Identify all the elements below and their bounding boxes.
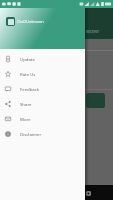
button[interactable]: Rate Us <box>0 66 85 81</box>
button[interactable]: Disclaimer <box>0 126 85 141</box>
staticText: Feedback <box>20 86 40 92</box>
staticText: More <box>20 116 31 122</box>
staticText: Update <box>20 56 35 62</box>
staticText: Rate Us <box>20 71 36 77</box>
staticText: RECENT <box>86 29 99 34</box>
button[interactable]: Share <box>0 96 85 111</box>
staticText: Dial2Unknown <box>17 19 44 24</box>
button[interactable]: Feedback <box>0 81 85 96</box>
button[interactable] <box>86 93 105 108</box>
button[interactable]: Recents <box>81 186 95 200</box>
button[interactable]: More <box>0 111 85 126</box>
staticText: Share <box>20 101 32 107</box>
button[interactable]: Update <box>0 51 85 66</box>
staticText: Disclaimer <box>20 131 42 137</box>
